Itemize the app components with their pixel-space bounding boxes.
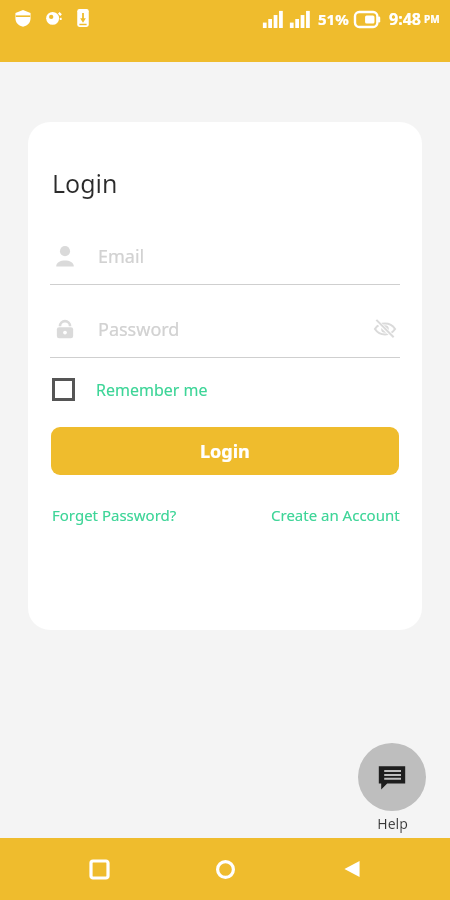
staticText: 9:48 xyxy=(389,8,421,30)
button[interactable]: Help xyxy=(358,743,426,833)
button[interactable]: Email xyxy=(50,234,400,285)
staticText: Login xyxy=(52,166,118,200)
staticText: Email xyxy=(98,244,400,269)
button[interactable]: Create an Account xyxy=(271,505,400,525)
staticText: Login xyxy=(200,439,250,464)
button[interactable]: Password xyxy=(50,307,400,358)
button[interactable]: Remember me xyxy=(50,378,208,401)
staticText: Create an Account xyxy=(271,505,400,525)
staticText: Remember me xyxy=(96,379,208,401)
button[interactable]: Login xyxy=(51,427,399,475)
staticText: Help xyxy=(377,814,408,833)
staticText: Forget Password? xyxy=(52,505,177,525)
staticText: Password xyxy=(98,317,370,342)
staticText: 51% xyxy=(318,9,349,29)
staticText: PM xyxy=(424,12,440,26)
button[interactable]: Show password xyxy=(370,314,400,344)
button[interactable]: Forget Password? xyxy=(52,505,177,525)
button[interactable]: Home xyxy=(197,841,253,897)
button[interactable]: Recent apps xyxy=(71,841,127,897)
button[interactable]: Back xyxy=(324,841,380,897)
